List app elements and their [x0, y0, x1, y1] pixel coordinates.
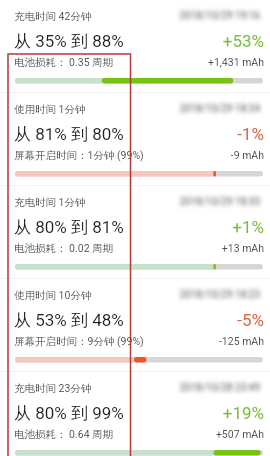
staticText: +1% — [0, 217, 264, 237]
staticText: +507 mAh — [0, 428, 264, 440]
button[interactable]: 充电时间 23分钟 — [0, 372, 270, 456]
staticText: -125 mAh — [0, 335, 264, 347]
button[interactable]: 使用时间 1分钟 — [0, 93, 270, 186]
staticText: -1% — [0, 124, 264, 144]
staticText: 2018/10/29 19:16 — [0, 10, 260, 22]
staticText: 电池损耗： 0.02 周期 — [14, 242, 114, 255]
staticText: 从 80% 到 81% — [14, 217, 124, 238]
staticText: +19% — [0, 403, 264, 423]
staticText: 从 35% 到 88% — [14, 31, 124, 52]
button[interactable]: 充电时间 42分钟 — [0, 0, 270, 93]
staticText: 使用时间 10分钟 — [14, 289, 92, 302]
staticText: 从 53% 到 48% — [14, 310, 124, 331]
button[interactable]: 充电时间 1分钟 — [0, 186, 270, 279]
staticText: 2018/10/28 23:49 — [0, 382, 260, 394]
staticText: 电池损耗： 0.64 周期 — [14, 428, 114, 441]
staticText: 充电时间 1分钟 — [14, 196, 86, 209]
staticText: -5% — [0, 310, 264, 330]
staticText: 从 80% 到 99% — [14, 403, 124, 424]
staticText: 屏幕开启时间：9分钟 (99%) — [14, 335, 144, 348]
staticText: 电池损耗： 0.35 周期 — [14, 56, 114, 69]
staticText: 2018/10/29 18:23 — [0, 289, 260, 301]
button[interactable]: 使用时间 10分钟 — [0, 279, 270, 372]
staticText: +1,431 mAh — [0, 56, 264, 68]
staticText: -9 mAh — [0, 149, 264, 161]
staticText: 充电时间 23分钟 — [14, 382, 92, 395]
staticText: 使用时间 1分钟 — [14, 103, 86, 116]
staticText: 2018/10/29 18:33 — [0, 196, 260, 208]
staticText: 2018/10/29 18:34 — [0, 103, 260, 115]
staticText: 从 81% 到 80% — [14, 124, 124, 145]
staticText: +13 mAh — [0, 242, 264, 254]
staticText: +53% — [0, 31, 264, 51]
staticText: 屏幕开启时间：1分钟 (99%) — [14, 149, 144, 162]
staticText: 充电时间 42分钟 — [14, 10, 92, 23]
